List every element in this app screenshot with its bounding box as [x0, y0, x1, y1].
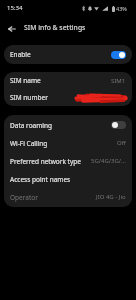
staticText: 5G/4G/3G/... [91, 157, 126, 165]
staticText: Enable [10, 50, 31, 59]
staticText: Off [117, 139, 126, 147]
staticText: SIM number [10, 93, 48, 102]
button[interactable]: Data roaming [4, 116, 132, 134]
staticText: Wi-Fi Calling [10, 139, 48, 148]
staticText: 43% [116, 5, 127, 12]
staticText: 15:34 [7, 4, 23, 12]
button[interactable]: Operator [4, 188, 132, 206]
staticText: Access point names [10, 175, 71, 184]
staticText: JIO 4G - Jio [96, 193, 126, 201]
button[interactable]: Wi-Fi Calling [4, 134, 132, 152]
staticText: Data roaming [10, 121, 52, 130]
other: Data roaming [111, 121, 126, 129]
button[interactable]: SIM number [4, 89, 132, 106]
button[interactable]: SIM name [4, 72, 132, 89]
staticText: SIM1 [111, 77, 126, 85]
button[interactable]: Enable [4, 45, 132, 64]
button[interactable]: Access point names [4, 170, 132, 188]
staticText: Preferred network type [10, 157, 81, 166]
button[interactable]: Preferred network type [4, 152, 132, 170]
staticText: SIM info & settings [24, 23, 86, 32]
staticText: Operator [10, 193, 38, 202]
button[interactable]: Back [5, 22, 18, 35]
other: Enable [111, 51, 126, 59]
staticText: SIM name [10, 76, 41, 85]
